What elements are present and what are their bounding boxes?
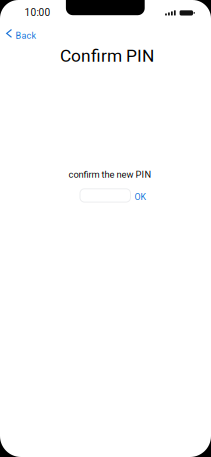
staticText: OK — [134, 192, 146, 202]
staticText: confirm the new PIN — [68, 169, 151, 180]
staticText: 10:00 — [24, 7, 50, 18]
staticText: Back — [15, 30, 36, 41]
staticText: Confirm PIN — [60, 46, 154, 66]
button[interactable]: OK — [131, 189, 150, 205]
button[interactable]: Back — [3, 25, 39, 42]
